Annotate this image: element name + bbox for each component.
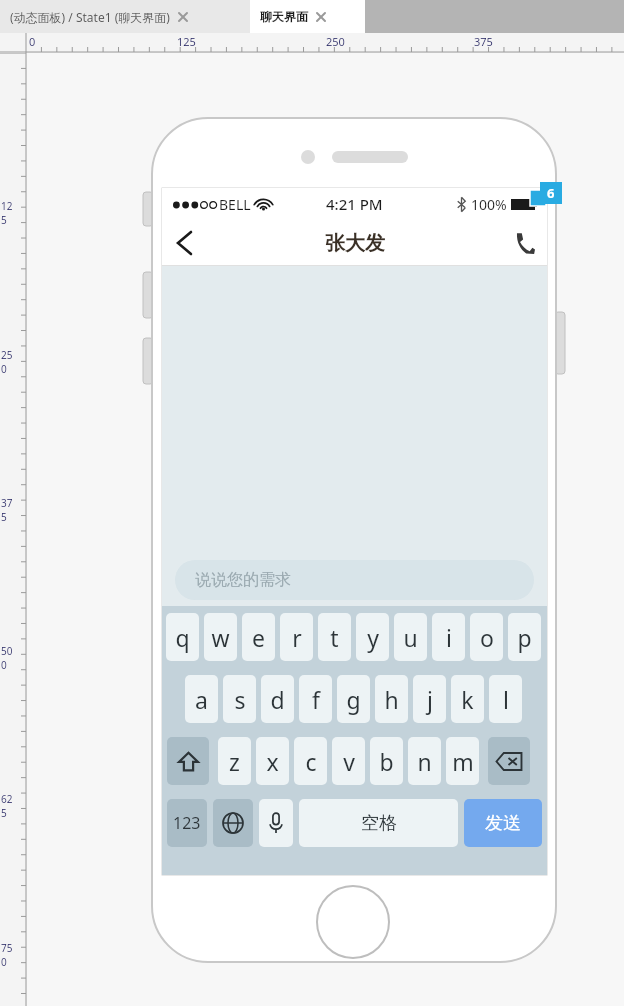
staticText: 125 — [177, 34, 196, 49]
button[interactable]: 说说您的需求 — [175, 560, 534, 600]
button[interactable]: v — [332, 737, 365, 785]
button[interactable]: Close tab — [176, 10, 190, 24]
button[interactable]: i — [432, 613, 465, 661]
staticText: m — [452, 746, 474, 777]
button[interactable]: p — [508, 613, 541, 661]
staticText: e — [252, 622, 265, 653]
staticText: p — [517, 622, 532, 653]
staticText: n — [417, 746, 432, 777]
button[interactable]: y — [356, 613, 389, 661]
button[interactable]: x — [256, 737, 289, 785]
staticText: 625 — [1, 792, 15, 820]
staticText: r — [292, 622, 302, 653]
button[interactable]: 123 — [167, 799, 207, 847]
staticText: 说说您的需求 — [195, 570, 291, 590]
staticText: 375 — [1, 496, 15, 524]
staticText: h — [384, 684, 399, 715]
button[interactable]: c — [294, 737, 327, 785]
button[interactable]: e — [242, 613, 275, 661]
staticText: 375 — [474, 34, 493, 49]
staticText: j — [427, 684, 433, 715]
staticText: 6 — [547, 184, 555, 202]
staticText: 空格 — [361, 812, 397, 835]
button[interactable]: k — [451, 675, 484, 723]
button[interactable]: n — [408, 737, 441, 785]
staticText: 发送 — [485, 812, 521, 835]
staticText: u — [403, 622, 418, 653]
button[interactable]: d — [261, 675, 294, 723]
button[interactable]: Close tab — [314, 10, 328, 24]
button[interactable]: h — [375, 675, 408, 723]
button[interactable]: 聊天界面 — [250, 0, 365, 33]
button[interactable]: b — [370, 737, 403, 785]
button[interactable]: (动态面板) / State1 (聊天界面) — [0, 0, 250, 33]
staticText: 100% — [471, 195, 507, 214]
staticText: l — [503, 684, 509, 715]
staticText: 0 — [29, 34, 36, 49]
staticText: BELL — [219, 195, 251, 214]
staticText: 125 — [1, 199, 15, 227]
staticText: 500 — [1, 644, 15, 672]
button[interactable]: q — [166, 613, 199, 661]
button[interactable]: f — [299, 675, 332, 723]
staticText: o — [480, 622, 494, 653]
button[interactable]: Backspace — [488, 737, 530, 785]
staticText: i — [446, 622, 452, 653]
staticText: b — [379, 746, 394, 777]
staticText: y — [367, 622, 379, 653]
staticText: 250 — [1, 348, 15, 376]
button[interactable]: j — [413, 675, 446, 723]
button[interactable]: a — [185, 675, 218, 723]
button[interactable]: 空格 — [299, 799, 458, 847]
button[interactable]: Shift — [167, 737, 209, 785]
button[interactable]: t — [318, 613, 351, 661]
staticText: 4:21 PM — [326, 194, 383, 214]
staticText: 250 — [326, 34, 345, 49]
staticText: k — [461, 684, 474, 715]
staticText: (动态面板) / State1 (聊天界面) — [10, 9, 170, 25]
button[interactable]: g — [337, 675, 370, 723]
button[interactable]: l — [489, 675, 522, 723]
button[interactable]: o — [470, 613, 503, 661]
button[interactable]: Switch language — [213, 799, 253, 847]
button[interactable]: r — [280, 613, 313, 661]
staticText: 123 — [173, 812, 201, 834]
staticText: 750 — [1, 941, 15, 969]
staticText: x — [266, 746, 279, 777]
staticText: s — [234, 684, 246, 715]
staticText: z — [229, 746, 240, 777]
staticText: v — [343, 746, 355, 777]
button[interactable]: 发送 — [464, 799, 542, 847]
staticText: c — [305, 746, 317, 777]
staticText: a — [195, 684, 208, 715]
button[interactable]: Voice input — [259, 799, 293, 847]
staticText: w — [211, 622, 230, 653]
staticText: f — [312, 684, 320, 715]
staticText: 聊天界面 — [260, 9, 308, 24]
button[interactable]: w — [204, 613, 237, 661]
button[interactable]: Call — [501, 220, 547, 266]
button[interactable]: z — [218, 737, 251, 785]
staticText: d — [270, 684, 285, 715]
staticText: q — [175, 622, 190, 653]
staticText: t — [330, 622, 339, 653]
button[interactable]: Back — [162, 221, 206, 265]
staticText: 张大发 — [325, 231, 385, 256]
staticText: g — [346, 684, 361, 715]
button[interactable]: m — [446, 737, 479, 785]
button[interactable]: u — [394, 613, 427, 661]
button[interactable]: s — [223, 675, 256, 723]
